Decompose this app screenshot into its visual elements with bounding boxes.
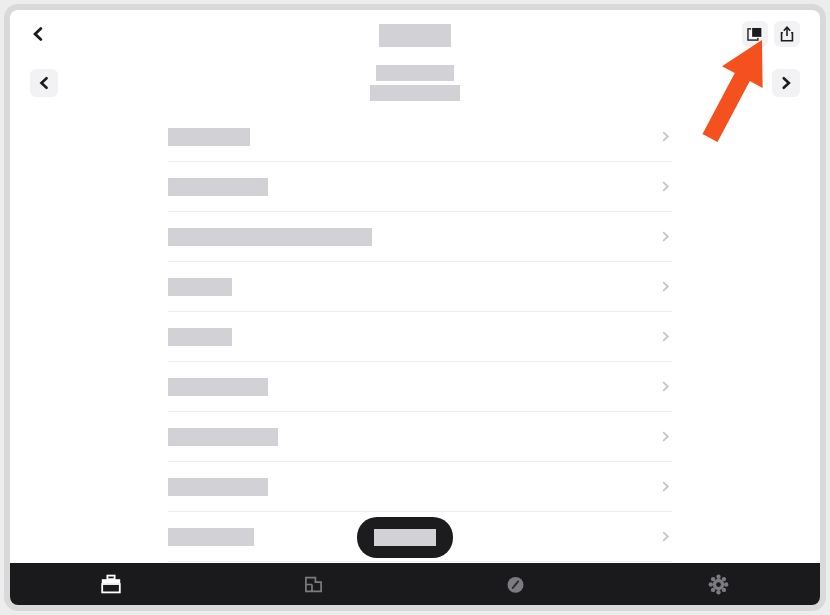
- button[interactable]: Projects: [10, 563, 212, 605]
- button[interactable]: [10, 212, 820, 262]
- button[interactable]: Back: [24, 20, 52, 48]
- button[interactable]: [10, 412, 820, 462]
- button[interactable]: [10, 462, 820, 512]
- button[interactable]: [10, 112, 820, 162]
- button[interactable]: Share: [774, 21, 800, 47]
- button[interactable]: Plans: [212, 563, 414, 605]
- button[interactable]: [10, 162, 820, 212]
- button[interactable]: [10, 362, 820, 412]
- button[interactable]: [357, 517, 453, 558]
- button[interactable]: Next: [772, 69, 800, 97]
- button[interactable]: [10, 312, 820, 362]
- button[interactable]: Duplicate: [742, 21, 768, 47]
- button[interactable]: [10, 262, 820, 312]
- button[interactable]: [10, 512, 820, 562]
- button[interactable]: Settings: [617, 563, 820, 605]
- button[interactable]: Previous: [30, 69, 58, 97]
- button[interactable]: Performance: [414, 563, 617, 605]
